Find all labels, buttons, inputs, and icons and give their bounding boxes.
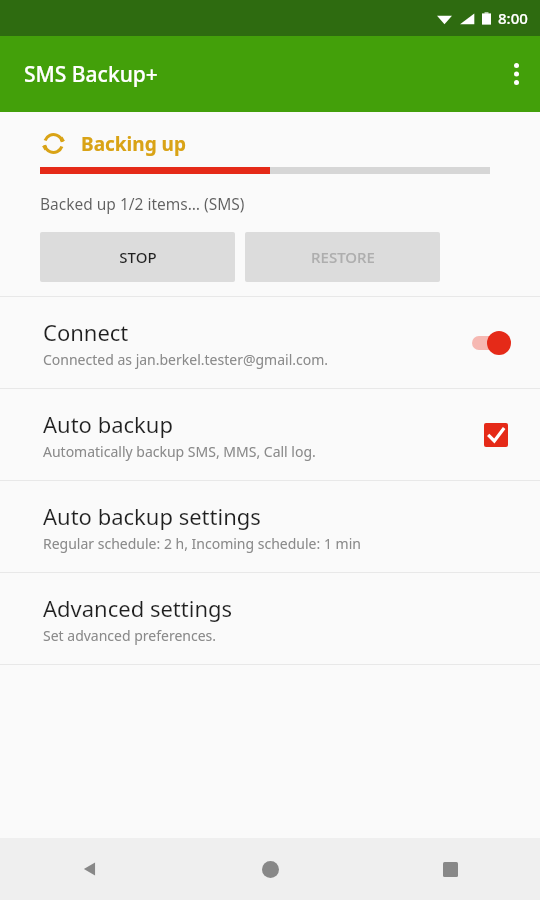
staticText: Auto backup settings (43, 501, 261, 531)
button[interactable]: Advanced settings (0, 573, 540, 664)
button[interactable]: STOP (40, 232, 235, 282)
other: Syncing (40, 130, 67, 157)
button[interactable]: Back (0, 838, 180, 900)
staticText: Backed up 1/2 items… (SMS) (40, 193, 245, 214)
staticText: Advanced settings (43, 593, 233, 623)
staticText: Regular schedule: 2 h, Incoming schedule… (43, 534, 361, 553)
staticText: RESTORE (311, 247, 375, 267)
staticText: Backing up (81, 131, 186, 157)
button[interactable]: More options (492, 50, 540, 98)
button[interactable]: Auto backup settings (0, 481, 540, 572)
button[interactable]: Connect toggle (464, 326, 516, 360)
button[interactable]: Connect (0, 297, 540, 388)
staticText: STOP (119, 247, 157, 267)
button[interactable]: Recent apps (360, 838, 540, 900)
button[interactable]: Auto backup (0, 389, 540, 480)
staticText: Set advanced preferences. (43, 626, 217, 645)
staticText: Connected as jan.berkel.tester@gmail.com… (43, 350, 329, 369)
staticText: Automatically backup SMS, MMS, Call log. (43, 442, 316, 461)
button[interactable]: Auto backup checkbox (476, 415, 516, 455)
button[interactable]: Home (180, 838, 360, 900)
staticText: Connect (43, 317, 129, 347)
staticText: Auto backup (43, 409, 173, 439)
button[interactable]: RESTORE (245, 232, 440, 282)
staticText: SMS Backup+ (24, 60, 158, 89)
staticText: 8:00 (498, 8, 528, 28)
